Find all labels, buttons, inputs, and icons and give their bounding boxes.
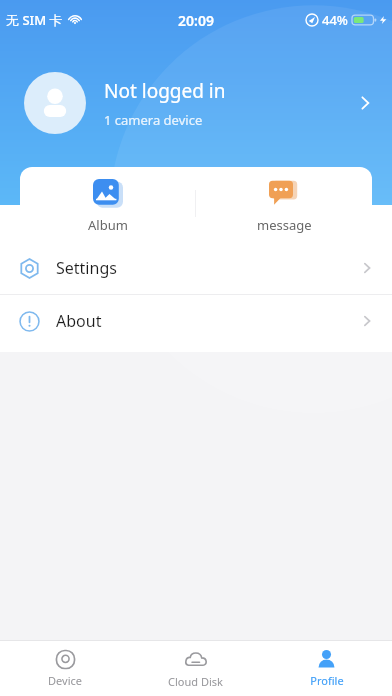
- button[interactable]: Device: [0, 641, 130, 696]
- button[interactable]: Profile: [261, 641, 392, 696]
- other: Device: [55, 649, 76, 670]
- button[interactable]: About: [0, 295, 392, 347]
- button[interactable]: message: [196, 167, 372, 240]
- staticText: Settings: [56, 257, 358, 279]
- staticText: 1 camera device: [104, 111, 203, 129]
- staticText: 20:09: [178, 11, 214, 30]
- staticText: message: [257, 216, 312, 234]
- staticText: Not logged in: [104, 78, 226, 104]
- other: Cloud Disk: [185, 649, 207, 671]
- button[interactable]: Cloud Disk: [130, 641, 261, 696]
- other: Profile: [316, 649, 337, 670]
- staticText: About: [56, 310, 358, 332]
- button[interactable]: Not logged in: [0, 40, 392, 166]
- staticText: Album: [88, 216, 128, 234]
- button[interactable]: Settings: [0, 242, 392, 294]
- button[interactable]: Album: [20, 167, 195, 240]
- staticText: Profile: [310, 673, 344, 688]
- staticText: 无 SIM 卡: [6, 11, 63, 29]
- staticText: Device: [48, 673, 82, 688]
- staticText: 44%: [322, 11, 348, 29]
- staticText: Cloud Disk: [168, 674, 223, 689]
